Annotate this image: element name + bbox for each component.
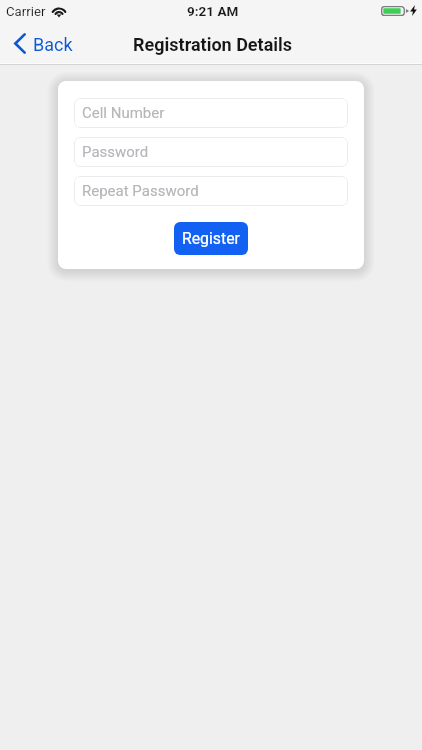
button[interactable]: Password <box>74 137 348 167</box>
button[interactable]: Cell Number <box>74 98 348 128</box>
staticText: Carrier <box>6 4 46 19</box>
button[interactable]: Register <box>174 222 248 255</box>
staticText: Back <box>33 34 73 55</box>
button[interactable]: Repeat Password <box>74 176 348 206</box>
staticText: Password <box>82 143 149 161</box>
staticText: Repeat Password <box>82 182 199 200</box>
button[interactable]: Back <box>0 31 85 60</box>
staticText: Register <box>182 229 240 248</box>
staticText: Cell Number <box>82 104 165 122</box>
staticText: 9:21 AM <box>187 3 239 19</box>
staticText: Registration Details <box>133 34 293 55</box>
